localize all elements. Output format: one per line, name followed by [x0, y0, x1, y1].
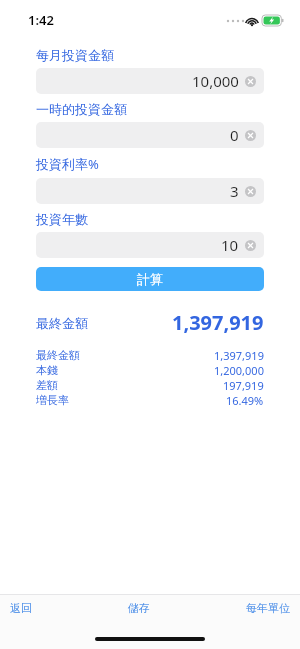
staticText: 每月投資金額 — [36, 47, 114, 63]
button[interactable]: 每年單位 — [246, 601, 290, 615]
staticText: 10 — [221, 235, 239, 255]
button[interactable]: 0 — [36, 122, 264, 148]
staticText: 本錢 — [36, 363, 58, 377]
button[interactable]: 3 — [36, 178, 264, 204]
staticText: 最終金額 — [36, 315, 88, 331]
staticText: 1,397,919 — [214, 348, 264, 363]
staticText: 16.49% — [226, 393, 264, 408]
staticText: 1:42 — [28, 11, 54, 29]
staticText: 差額 — [36, 378, 58, 392]
staticText: 投資利率% — [36, 155, 99, 173]
staticText: 計算 — [137, 271, 163, 287]
staticText: 0 — [230, 125, 239, 145]
staticText: 投資年數 — [36, 211, 88, 227]
staticText: 3 — [230, 181, 239, 201]
button[interactable]: 儲存 — [128, 601, 150, 615]
button[interactable]: 10,000 — [36, 68, 264, 94]
staticText: 197,919 — [223, 378, 264, 393]
button[interactable]: 計算 — [36, 267, 264, 291]
staticText: 1,397,919 — [172, 309, 264, 336]
button[interactable]: 10 — [36, 232, 264, 258]
staticText: 増長率 — [36, 393, 69, 407]
staticText: 最終金額 — [36, 348, 80, 362]
staticText: 1,200,000 — [214, 363, 264, 378]
staticText: 一時的投資金額 — [36, 101, 127, 117]
staticText: 10,000 — [192, 71, 239, 91]
button[interactable]: 返回 — [10, 601, 32, 615]
